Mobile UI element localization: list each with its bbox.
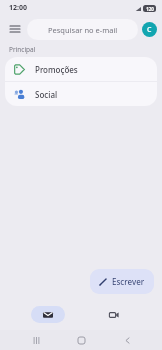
button[interactable]: E-mail [31, 306, 65, 323]
button[interactable]: Meet [97, 306, 131, 323]
staticText: 12:00 [9, 3, 27, 13]
staticText: Promoções [35, 64, 78, 75]
button[interactable]: Menu [5, 19, 25, 39]
button[interactable]: Recentes [26, 330, 46, 350]
button[interactable]: Social [5, 82, 157, 106]
button[interactable]: Início [71, 330, 91, 350]
staticText: Escrever [112, 276, 145, 287]
button[interactable]: Conta [142, 22, 157, 37]
button[interactable]: Escrever [90, 269, 154, 294]
button[interactable]: Pesquisar no e-mail [27, 19, 138, 40]
button[interactable]: Voltar [117, 330, 137, 350]
staticText: 120 [146, 6, 154, 12]
button[interactable]: Promoções [5, 57, 157, 81]
staticText: Principal [9, 45, 36, 54]
staticText: Pesquisar no e-mail [48, 25, 118, 35]
staticText: Social [35, 89, 58, 100]
staticText: C [147, 25, 152, 35]
